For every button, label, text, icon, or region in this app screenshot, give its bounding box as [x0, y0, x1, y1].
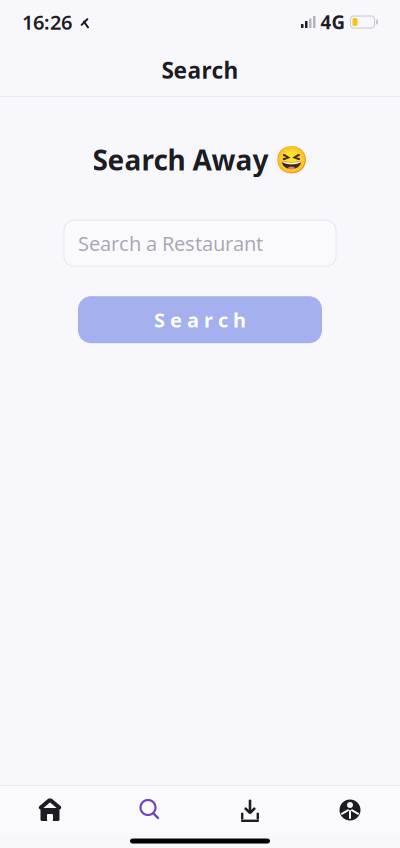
staticText: 16:26 [22, 9, 72, 35]
button[interactable]: Home [0, 786, 100, 834]
button[interactable]: Search [100, 786, 200, 834]
button[interactable]: Downloads [200, 786, 300, 834]
staticText: Search [161, 55, 238, 85]
button[interactable]: Profile [300, 786, 400, 834]
button[interactable]: S e a r c h [78, 296, 322, 343]
staticText: S e a r c h [154, 306, 246, 333]
staticText: 4G [320, 10, 345, 34]
staticText: Search Away [92, 141, 268, 178]
staticText: Search a Restaurant [78, 230, 263, 256]
staticText: 😆 [274, 144, 307, 175]
